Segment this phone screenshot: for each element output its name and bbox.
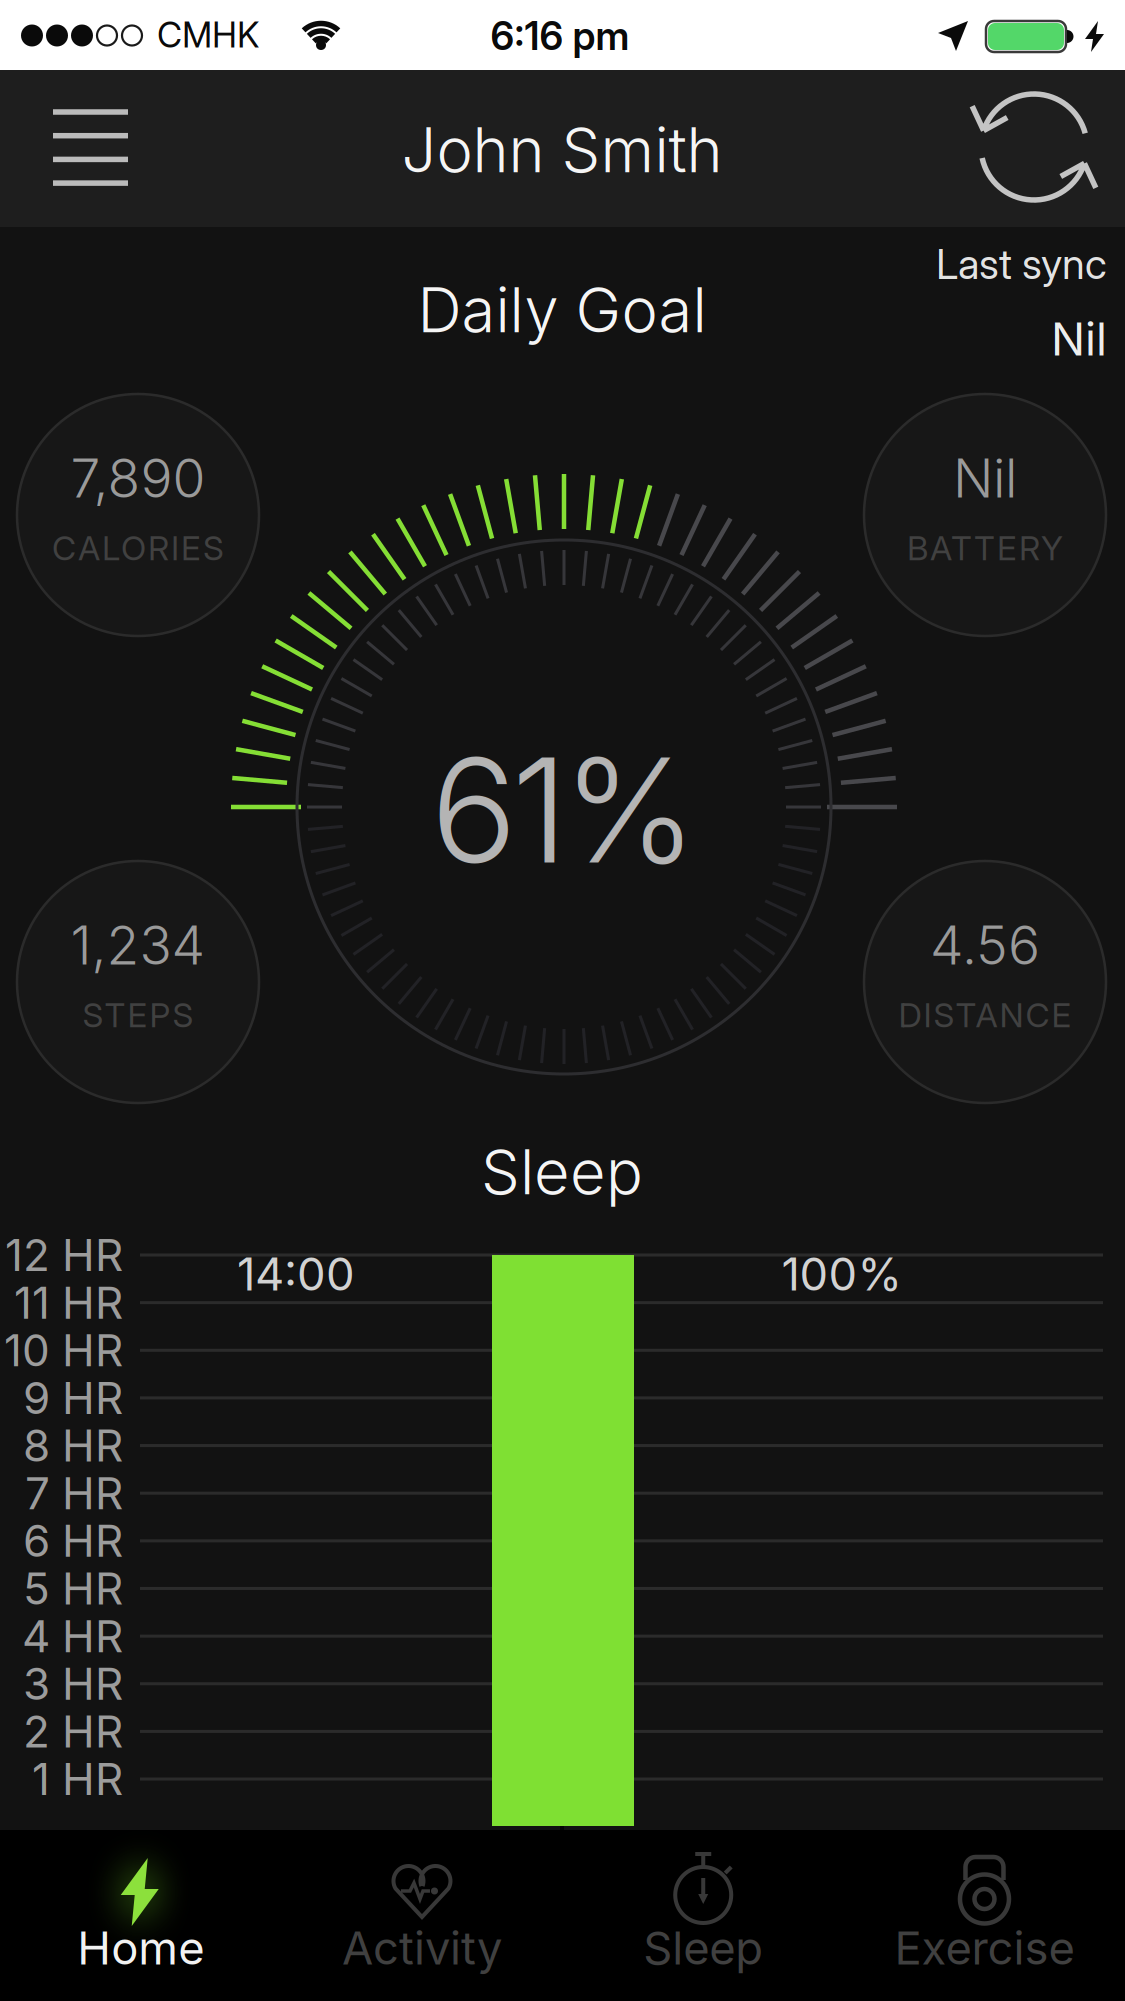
staticText: 9 HR [23, 1372, 123, 1424]
staticText: 1,234 [70, 913, 205, 976]
staticText: Sleep [481, 1136, 643, 1208]
staticText: 4.56 [930, 913, 1040, 976]
staticText: Nil [953, 446, 1017, 509]
staticText: 4 HR [22, 1610, 123, 1662]
staticText: STEPS [82, 995, 193, 1035]
staticText: Sleep [643, 1921, 763, 1975]
staticText: 5 HR [23, 1562, 123, 1614]
staticText: CALORIES [52, 528, 224, 568]
button[interactable]: Sync [972, 85, 1097, 210]
staticText: 8 HR [23, 1420, 123, 1471]
staticText: 1 HR [32, 1753, 123, 1805]
button[interactable]: Menu [40, 98, 140, 198]
staticText: 7 HR [25, 1467, 123, 1519]
staticText: 14:00 [237, 1247, 355, 1301]
button[interactable]: Home [0, 1832, 281, 2001]
staticText: Home [77, 1921, 204, 1975]
staticText: 3 HR [23, 1658, 123, 1710]
staticText: Last sync [936, 240, 1107, 288]
staticText: Daily Goal [417, 274, 706, 346]
staticText: 11 HR [14, 1277, 123, 1329]
staticText: Exercise [894, 1921, 1074, 1975]
button[interactable]: Exercise [844, 1832, 1125, 2001]
button[interactable]: Activity [281, 1832, 562, 2001]
staticText: 6:16 pm [490, 13, 629, 59]
staticText: CMHK [157, 15, 259, 55]
staticText: Activity [342, 1921, 502, 1975]
staticText: 10 HR [4, 1324, 123, 1376]
button[interactable]: Sleep [563, 1832, 844, 2001]
staticText: 2 HR [23, 1705, 123, 1757]
staticText: Nil [1051, 312, 1107, 366]
staticText: 12 HR [5, 1229, 123, 1281]
staticText: 100% [781, 1247, 902, 1301]
staticText: 61% [430, 725, 697, 895]
staticText: John Smith [401, 114, 722, 186]
staticText: 7,890 [70, 446, 205, 509]
staticText: 6 HR [23, 1515, 123, 1567]
staticText: BATTERY [907, 528, 1063, 568]
staticText: DISTANCE [898, 995, 1071, 1035]
